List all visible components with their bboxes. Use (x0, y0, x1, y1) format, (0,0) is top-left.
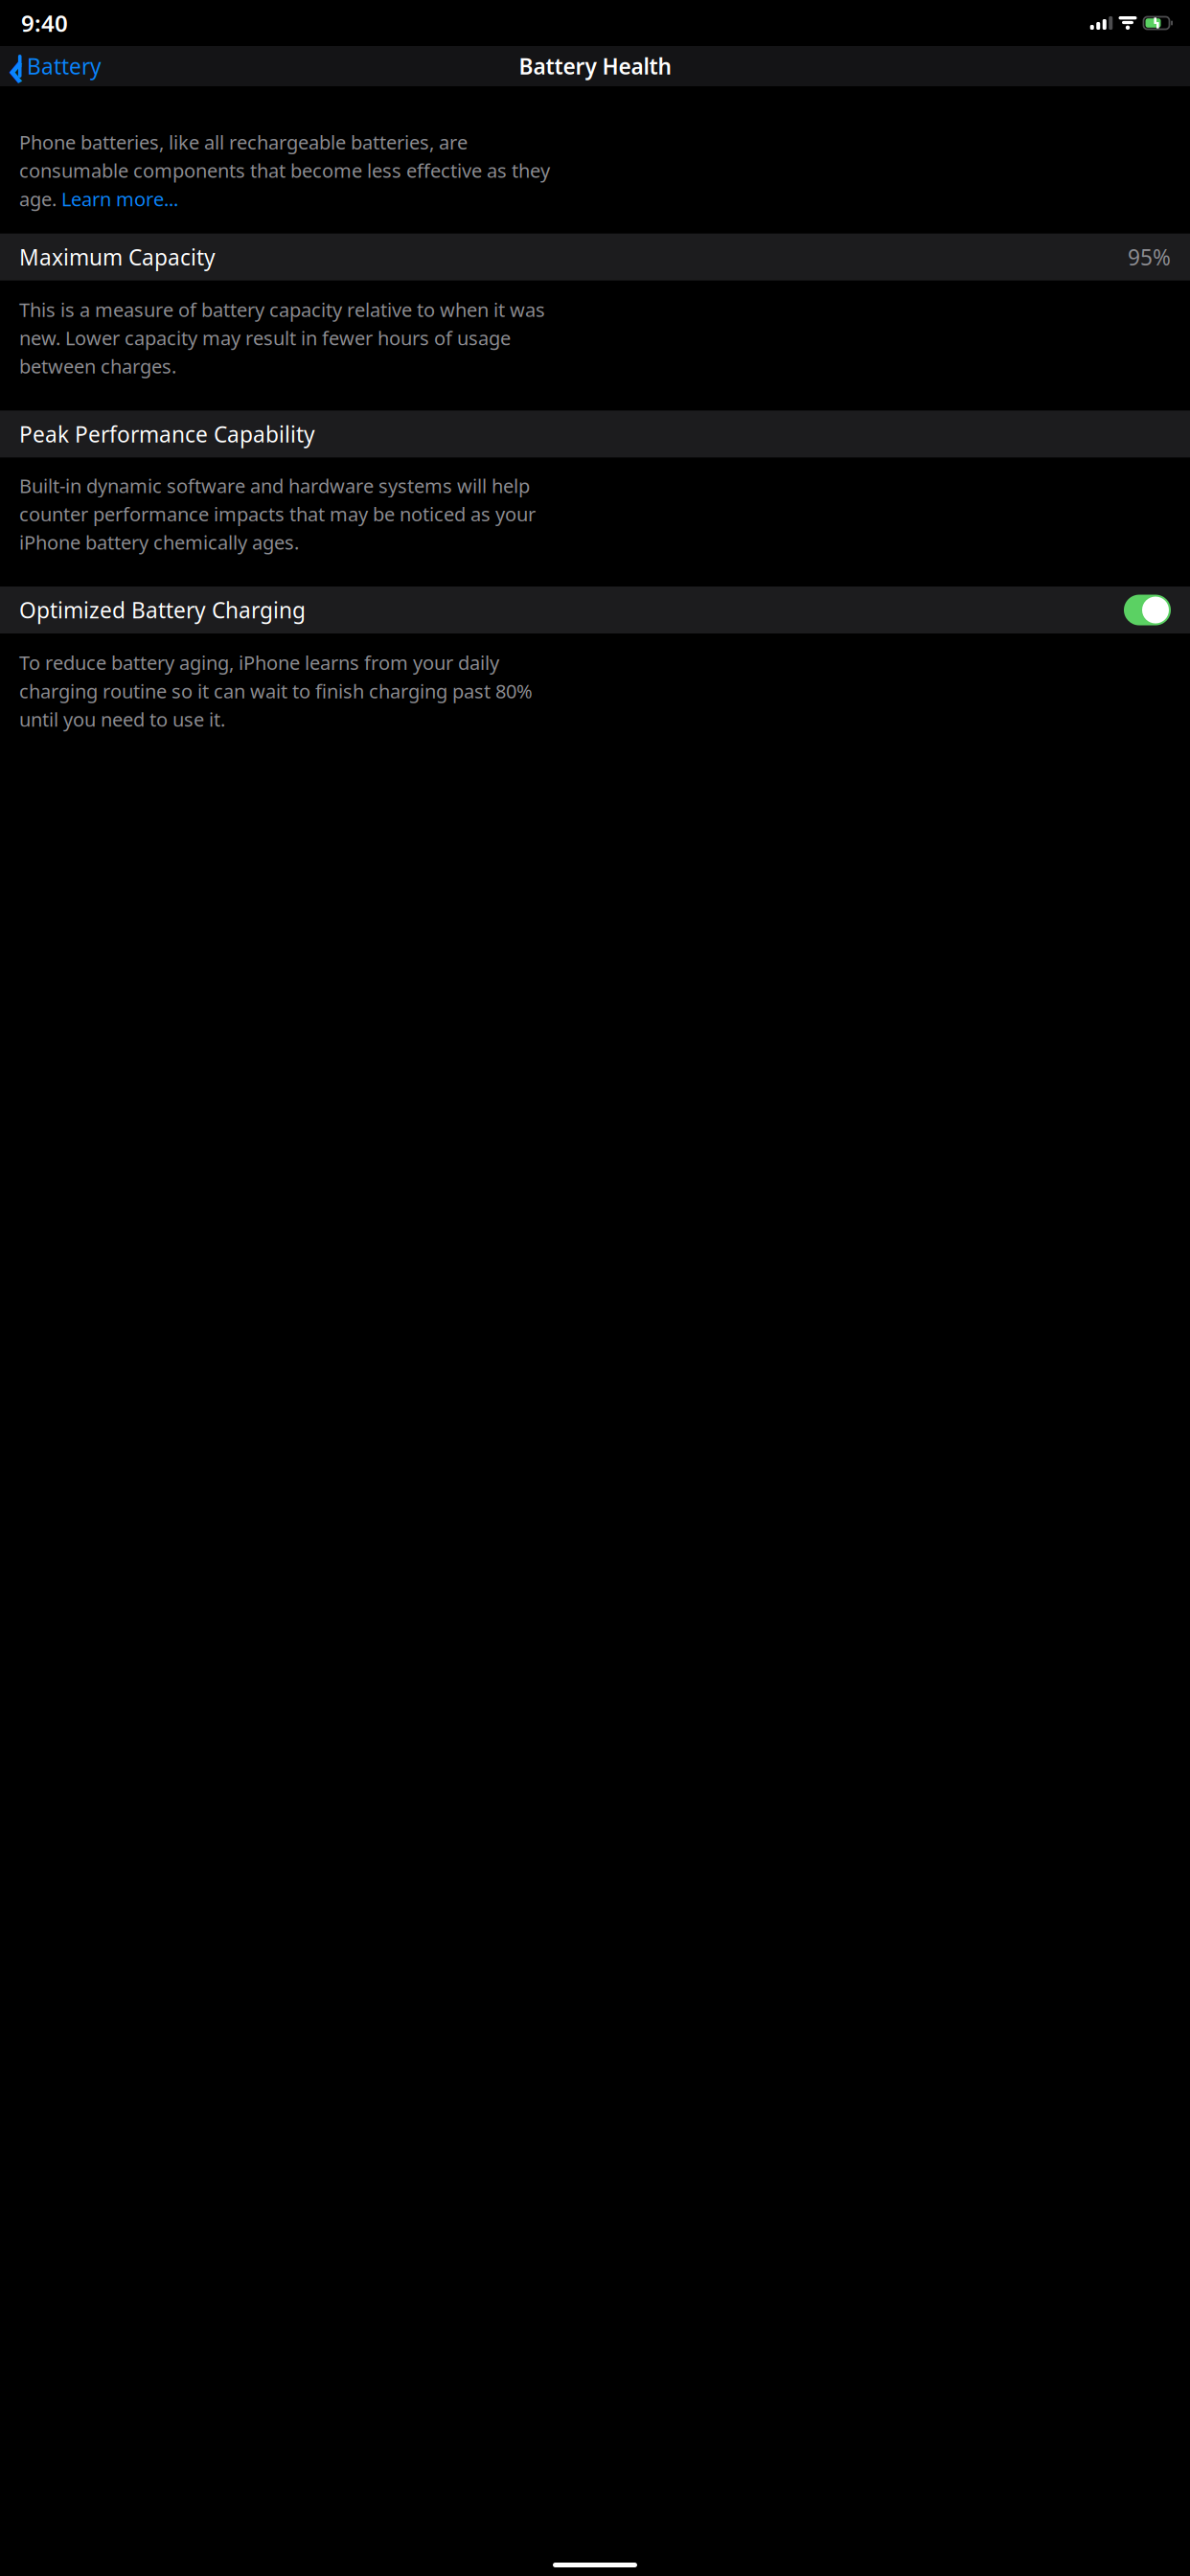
button[interactable]: Maximum Capacity (0, 234, 1190, 281)
button[interactable]: Learn more... (61, 186, 178, 212)
staticText: between charges. (19, 353, 176, 379)
staticText: counter performance impacts that may be … (19, 501, 536, 527)
staticText: ‹ (8, 32, 24, 100)
button[interactable]: Optimized Battery Charging (0, 586, 1190, 633)
staticText: Learn more... (61, 186, 178, 212)
staticText: Battery (27, 52, 102, 80)
button[interactable]: Peak Performance Capability (0, 411, 1190, 458)
staticText: iPhone battery chemically ages. (19, 529, 299, 555)
staticText: charging routine so it can wait to finis… (19, 678, 533, 704)
staticText: Battery Health (519, 52, 671, 80)
staticText: Built-in dynamic software and hardware s… (19, 473, 530, 498)
staticText: age. (19, 186, 61, 212)
staticText: new. Lower capacity may result in fewer … (19, 325, 511, 351)
staticText: This is a measure of battery capacity re… (19, 297, 545, 322)
staticText: To reduce battery aging, iPhone learns f… (19, 650, 499, 675)
staticText: Peak Performance Capability (19, 420, 315, 448)
staticText: 95% (1128, 243, 1171, 271)
button[interactable]: Back to Battery (0, 46, 102, 86)
staticText: Optimized Battery Charging (19, 596, 306, 624)
staticText: until you need to use it. (19, 706, 225, 732)
staticText: Phone batteries, like all rechargeable b… (19, 129, 468, 155)
staticText: consumable components that become less e… (19, 158, 550, 183)
staticText: Maximum Capacity (19, 243, 216, 271)
staticText: 9:40 (21, 8, 68, 38)
